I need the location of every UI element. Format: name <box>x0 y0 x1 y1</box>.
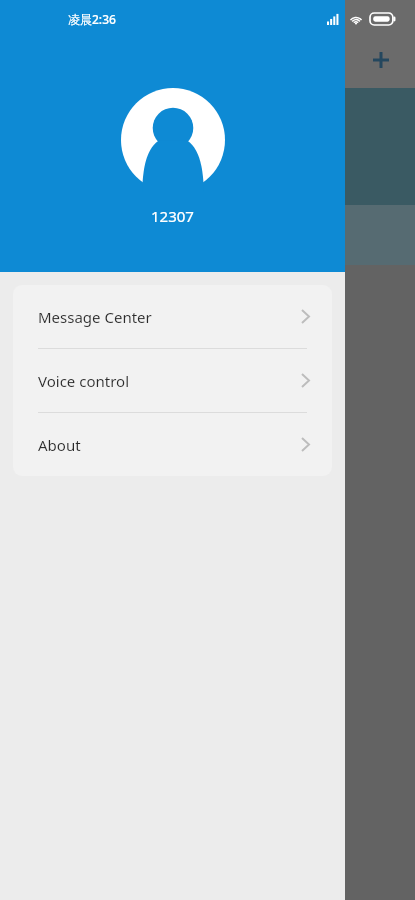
button[interactable]: Voice control <box>13 349 332 412</box>
staticText: Voice control <box>38 371 301 391</box>
staticText: Message Center <box>38 307 301 327</box>
staticText: 12307 <box>151 206 194 226</box>
staticText: About <box>38 435 301 455</box>
button[interactable]: Message Center <box>13 285 332 348</box>
staticText: 凌晨2:36 <box>68 11 116 27</box>
button[interactable]: Add <box>363 42 399 78</box>
button[interactable]: About <box>13 413 332 476</box>
